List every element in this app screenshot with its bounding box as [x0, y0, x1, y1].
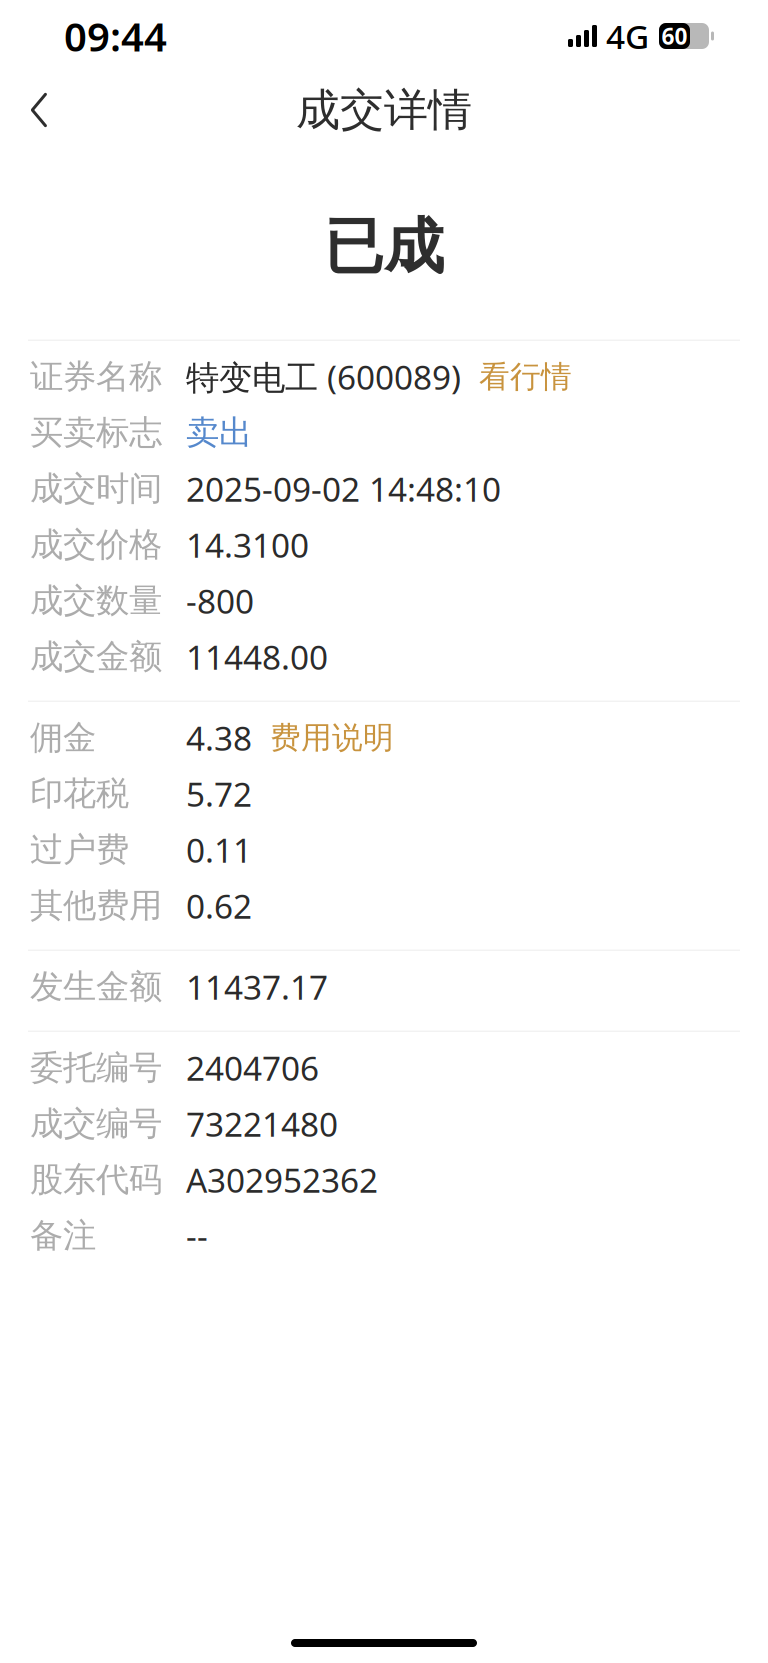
staticText: 过户费: [30, 829, 129, 870]
staticText: -800: [186, 579, 254, 623]
staticText: 备注: [30, 1215, 96, 1256]
button[interactable]: 看行情: [461, 354, 572, 400]
staticText: 已成: [324, 210, 444, 284]
staticText: 佣金: [30, 717, 96, 758]
staticText: 其他费用: [30, 885, 162, 926]
staticText: 09:44: [64, 9, 167, 62]
staticText: --: [186, 1214, 208, 1258]
staticText: 证券名称: [30, 356, 162, 397]
staticText: 2025-09-02 14:48:10: [186, 467, 501, 511]
staticText: 成交详情: [296, 83, 472, 137]
staticText: 印花税: [30, 773, 129, 814]
staticText: 成交价格: [30, 524, 162, 565]
staticText: 委托编号: [30, 1047, 162, 1088]
staticText: 5.72: [186, 772, 252, 816]
staticText: 2404706: [186, 1046, 319, 1090]
staticText: 股东代码: [30, 1159, 162, 1200]
staticText: 成交金额: [30, 636, 162, 677]
staticText: 60: [661, 21, 687, 51]
staticText: 成交时间: [30, 468, 162, 509]
button[interactable]: 返回: [0, 82, 68, 138]
staticText: A302952362: [186, 1158, 378, 1202]
button[interactable]: 费用说明: [252, 715, 394, 761]
staticText: 0.11: [186, 828, 252, 872]
staticText: 4G: [606, 14, 649, 58]
staticText: 买卖标志: [30, 412, 162, 453]
staticText: 73221480: [186, 1102, 338, 1146]
staticText: 14.3100: [186, 523, 309, 567]
staticText: 0.62: [186, 884, 252, 928]
staticText: 成交编号: [30, 1103, 162, 1144]
staticText: 卖出: [186, 412, 252, 453]
staticText: 看行情: [479, 358, 572, 396]
staticText: 11448.00: [186, 635, 328, 679]
staticText: 费用说明: [270, 719, 394, 757]
staticText: 成交数量: [30, 580, 162, 621]
staticText: 11437.17: [186, 965, 328, 1009]
staticText: 发生金额: [30, 966, 162, 1007]
staticText: 特变电工 (600089): [186, 355, 461, 399]
staticText: 4.38: [186, 716, 252, 760]
